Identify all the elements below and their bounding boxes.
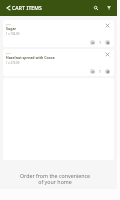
button[interactable]: Increase quantity bbox=[105, 40, 110, 45]
staticText: Order from the convenience of your home bbox=[0, 172, 110, 185]
button[interactable]: Increase quantity bbox=[105, 69, 110, 74]
button[interactable]: JAM bbox=[3, 49, 114, 76]
button[interactable]: JAM bbox=[3, 20, 114, 47]
button[interactable]: Back bbox=[2, 0, 14, 16]
button[interactable]: Decrease quantity bbox=[90, 40, 95, 45]
button[interactable]: Remove item bbox=[103, 50, 111, 58]
staticText: JAM bbox=[6, 51, 11, 54]
button[interactable]: Remove item bbox=[103, 21, 111, 29]
staticText: Sugar bbox=[6, 26, 17, 31]
staticText: 1 x 104.00 bbox=[6, 32, 20, 36]
staticText: JAM bbox=[6, 22, 11, 25]
button[interactable]: Filter bbox=[102, 0, 115, 16]
staticText: 1 bbox=[99, 69, 102, 74]
staticText: Hazelnut spread with Cocoa bbox=[6, 55, 55, 60]
button[interactable]: Decrease quantity bbox=[90, 69, 95, 74]
button[interactable]: Search bbox=[89, 0, 102, 16]
staticText: 1 x 275.00 bbox=[6, 61, 20, 65]
staticText: 1 bbox=[99, 40, 102, 45]
staticText: CART ITEMS bbox=[12, 5, 42, 12]
